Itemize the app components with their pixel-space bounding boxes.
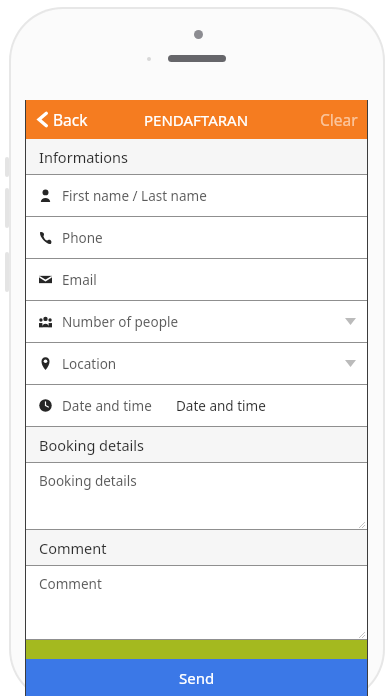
button[interactable]: Email (26, 259, 367, 300)
button[interactable]: Location (26, 343, 367, 384)
staticText: Clear (320, 109, 358, 130)
staticText: Informations (39, 147, 128, 167)
button[interactable]: Comment (26, 566, 367, 640)
staticText: Booking details (39, 435, 144, 455)
button[interactable]: First name / Last name (26, 175, 367, 216)
staticText: Date and time (176, 397, 266, 415)
button[interactable]: Number of people (26, 301, 367, 342)
staticText: PENDAFTARAN (144, 110, 249, 130)
staticText: Location (62, 355, 117, 373)
button[interactable]: Send (26, 659, 367, 696)
button[interactable]: Clear (311, 101, 367, 138)
staticText: Comment (39, 538, 107, 558)
staticText: Phone (62, 229, 103, 247)
staticText: Booking details (39, 472, 137, 490)
staticText: Comment (39, 575, 102, 593)
button[interactable]: Phone (26, 217, 367, 258)
staticText: Back (53, 109, 88, 130)
staticText: Date and time (62, 397, 152, 415)
staticText: Send (179, 668, 215, 688)
button[interactable]: Back (33, 102, 92, 137)
button[interactable]: Date and time (26, 385, 367, 426)
staticText: Email (62, 271, 97, 289)
staticText: Number of people (62, 313, 179, 331)
staticText: First name / Last name (62, 187, 207, 205)
button[interactable]: Booking details (26, 463, 367, 530)
